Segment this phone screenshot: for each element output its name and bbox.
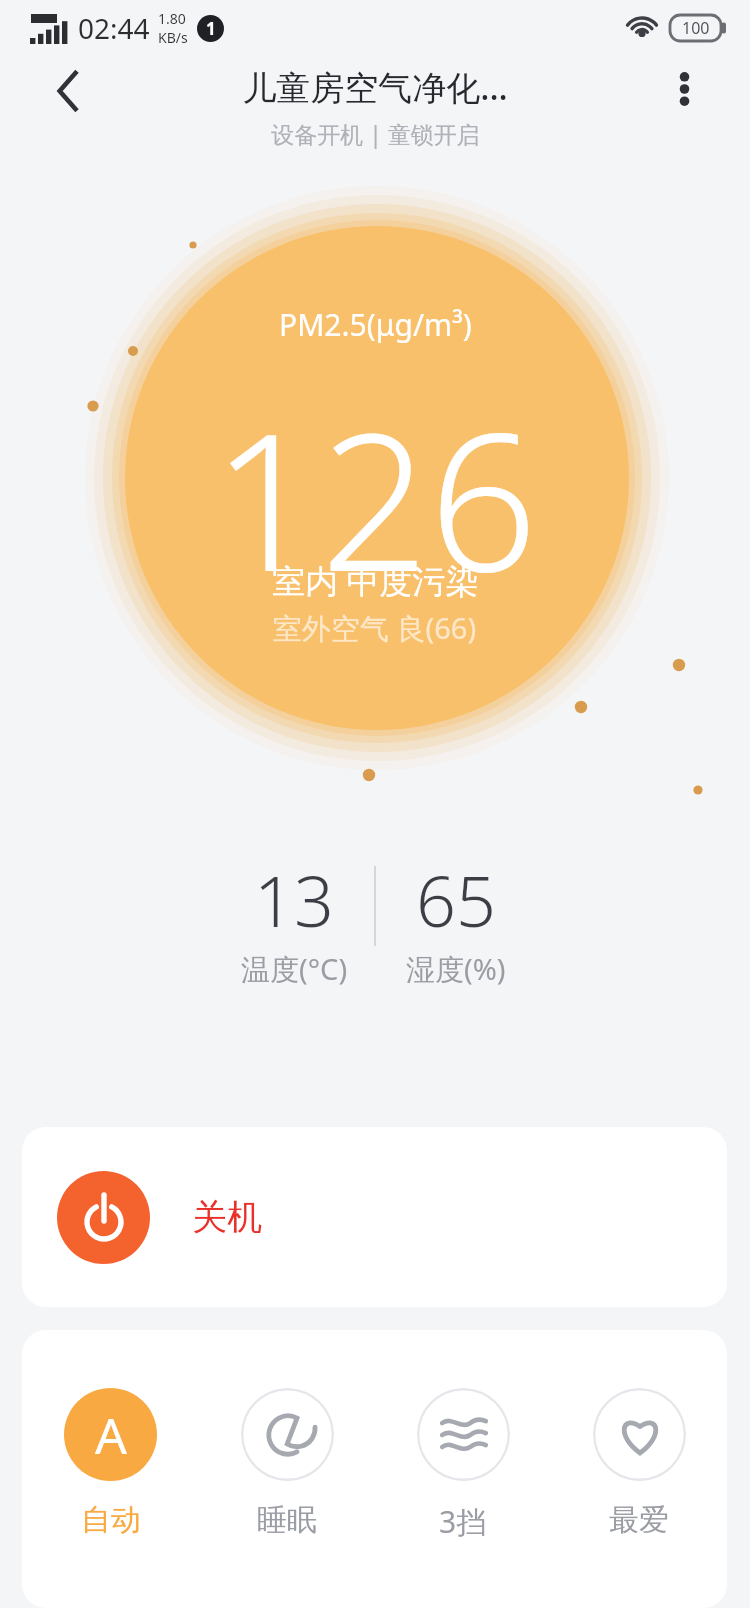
staticText: 13 — [254, 852, 334, 947]
staticText: PM2.5(μg/m³) — [279, 304, 472, 345]
staticText: 室内 中度污染 — [272, 558, 479, 603]
button[interactable]: 关机 — [22, 1127, 727, 1307]
button[interactable]: Back — [34, 57, 102, 125]
staticText: 室外空气 良(66) — [273, 608, 477, 648]
staticText: 自动 — [81, 1501, 141, 1539]
staticText: 儿童房空气净化... — [242, 64, 508, 110]
staticText: KB/s — [158, 28, 188, 47]
staticText: 65 — [416, 852, 496, 947]
button[interactable]: A — [22, 1388, 199, 1539]
staticText: 湿度(%) — [406, 949, 506, 989]
button[interactable]: 睡眠 — [199, 1388, 375, 1539]
button[interactable]: 最爱 — [551, 1388, 727, 1539]
staticText: 设备开机 | 童锁开启 — [271, 118, 480, 149]
staticText: 1 — [206, 17, 216, 40]
button[interactable]: More options — [652, 57, 716, 121]
staticText: 02:44 — [78, 9, 150, 47]
staticText: 126 — [212, 368, 538, 627]
staticText: 最爱 — [609, 1501, 669, 1539]
button[interactable]: 3挡 — [375, 1388, 551, 1542]
staticText: 1.80 — [158, 9, 186, 28]
staticText: 温度(°C) — [241, 949, 348, 989]
staticText: 3挡 — [439, 1501, 487, 1542]
staticText: 100 — [682, 17, 710, 39]
staticText: 关机 — [192, 1195, 262, 1239]
staticText: A — [95, 1401, 127, 1469]
staticText: 睡眠 — [257, 1501, 317, 1539]
